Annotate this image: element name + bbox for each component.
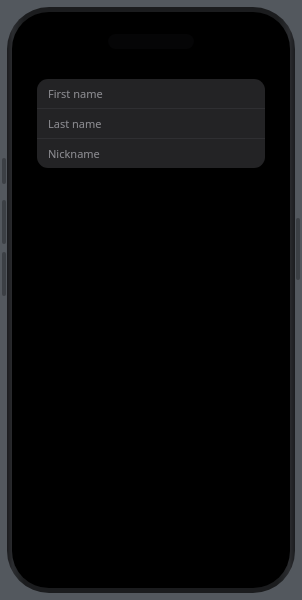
button[interactable]: Nickname	[37, 139, 265, 168]
staticText: Last name	[48, 116, 102, 131]
staticText: First name	[48, 86, 103, 101]
button[interactable]: Last name	[37, 109, 265, 138]
button[interactable]: First name	[37, 79, 265, 108]
staticText: Nickname	[48, 146, 100, 161]
